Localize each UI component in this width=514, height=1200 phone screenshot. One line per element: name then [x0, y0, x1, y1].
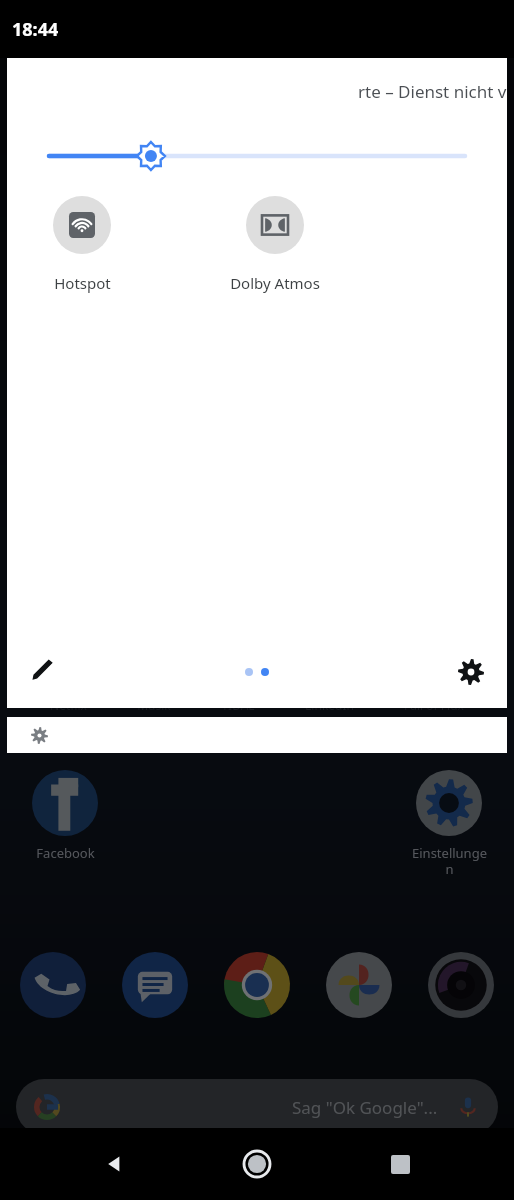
button[interactable]: Messages	[120, 950, 190, 1020]
button[interactable]: Settings shortcut	[7, 717, 507, 753]
button[interactable]: Settings	[449, 650, 493, 694]
staticText: 18:44	[12, 17, 59, 42]
staticText: Netflix	[50, 697, 87, 713]
button[interactable]: Recent apps	[372, 1136, 428, 1192]
button[interactable]: Camera	[426, 950, 496, 1020]
button[interactable]: Photos	[324, 950, 394, 1020]
button[interactable]: Home	[229, 1136, 285, 1192]
button[interactable]: Chrome	[222, 950, 292, 1020]
button[interactable]: Dolby Atmos	[220, 196, 330, 293]
staticText: Fall of Flux	[404, 697, 464, 713]
button[interactable]: Sag "Ok Google"...	[16, 1079, 498, 1135]
button[interactable]: Einstellunge n	[399, 770, 499, 877]
button[interactable]: Hotspot	[27, 196, 137, 293]
button[interactable]: Edit tiles	[21, 650, 65, 694]
staticText: Sag "Ok Google"...	[292, 1096, 438, 1119]
button[interactable]: Back	[87, 1136, 143, 1192]
staticText: rte – Dienst nicht v	[358, 80, 507, 103]
staticText: TIDAL	[221, 697, 255, 713]
button[interactable]: Phone	[18, 950, 88, 1020]
staticText: Einstellunge n	[412, 844, 487, 877]
staticText: Musik	[137, 697, 171, 713]
button[interactable]: Facebook	[15, 770, 115, 862]
staticText: Hotspot	[54, 273, 111, 293]
staticText: Dolby Atmos	[230, 273, 320, 293]
staticText: LinkedIn	[305, 697, 354, 713]
button[interactable]: Brightness	[7, 136, 507, 176]
staticText: Facebook	[36, 844, 95, 862]
